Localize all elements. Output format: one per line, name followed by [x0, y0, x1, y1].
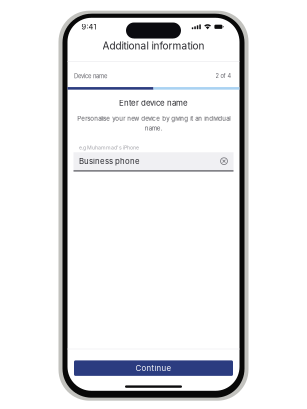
- staticText: Enter device name: [119, 98, 188, 108]
- staticText: e.g Muhammad's iPhone: [79, 144, 139, 151]
- staticText: Personalise your new device by giving it…: [77, 115, 230, 132]
- staticText: Continue: [135, 363, 171, 373]
- staticText: 9:41: [81, 22, 96, 31]
- button[interactable]: Clear device name: [218, 156, 229, 167]
- staticText: Device name: [74, 72, 107, 80]
- staticText: Business phone: [79, 156, 140, 166]
- button[interactable]: Additional information: [102, 40, 204, 52]
- staticText: Additional information: [102, 40, 204, 52]
- button[interactable]: Continue: [74, 360, 233, 376]
- staticText: 2 of 4: [215, 73, 231, 79]
